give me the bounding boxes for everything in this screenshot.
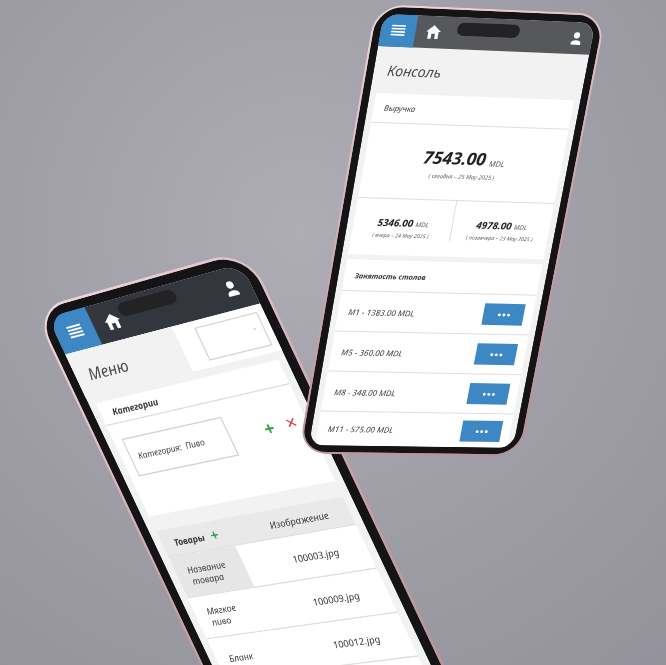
staticText: 100012.jpg [109,290,145,300]
staticText: M11 - 575.00 MDL [25,416,90,427]
button[interactable]: Мягкое пиво [15,244,166,277]
staticText: M8 - 348.00 MDL [25,378,85,389]
button[interactable]: M5 - 360.00 MDL [15,322,206,362]
button[interactable]: M1 - 1383.00 MDL [15,281,206,321]
button[interactable]: More options [157,331,197,353]
button[interactable]: M8 - 348.00 MDL [15,363,206,403]
button[interactable]: More options [157,290,197,312]
button[interactable]: More options [157,372,197,394]
staticText: 100018.jpg [109,324,145,334]
button[interactable]: M11 - 575.00 MDL [15,404,206,439]
staticText: M1 - 1383.00 MDL [25,296,90,307]
button[interactable]: Бланк [15,278,166,311]
button[interactable]: Пиво [15,312,166,345]
staticText: M5 - 360.00 MDL [25,337,85,348]
button[interactable]: More options [157,411,197,433]
